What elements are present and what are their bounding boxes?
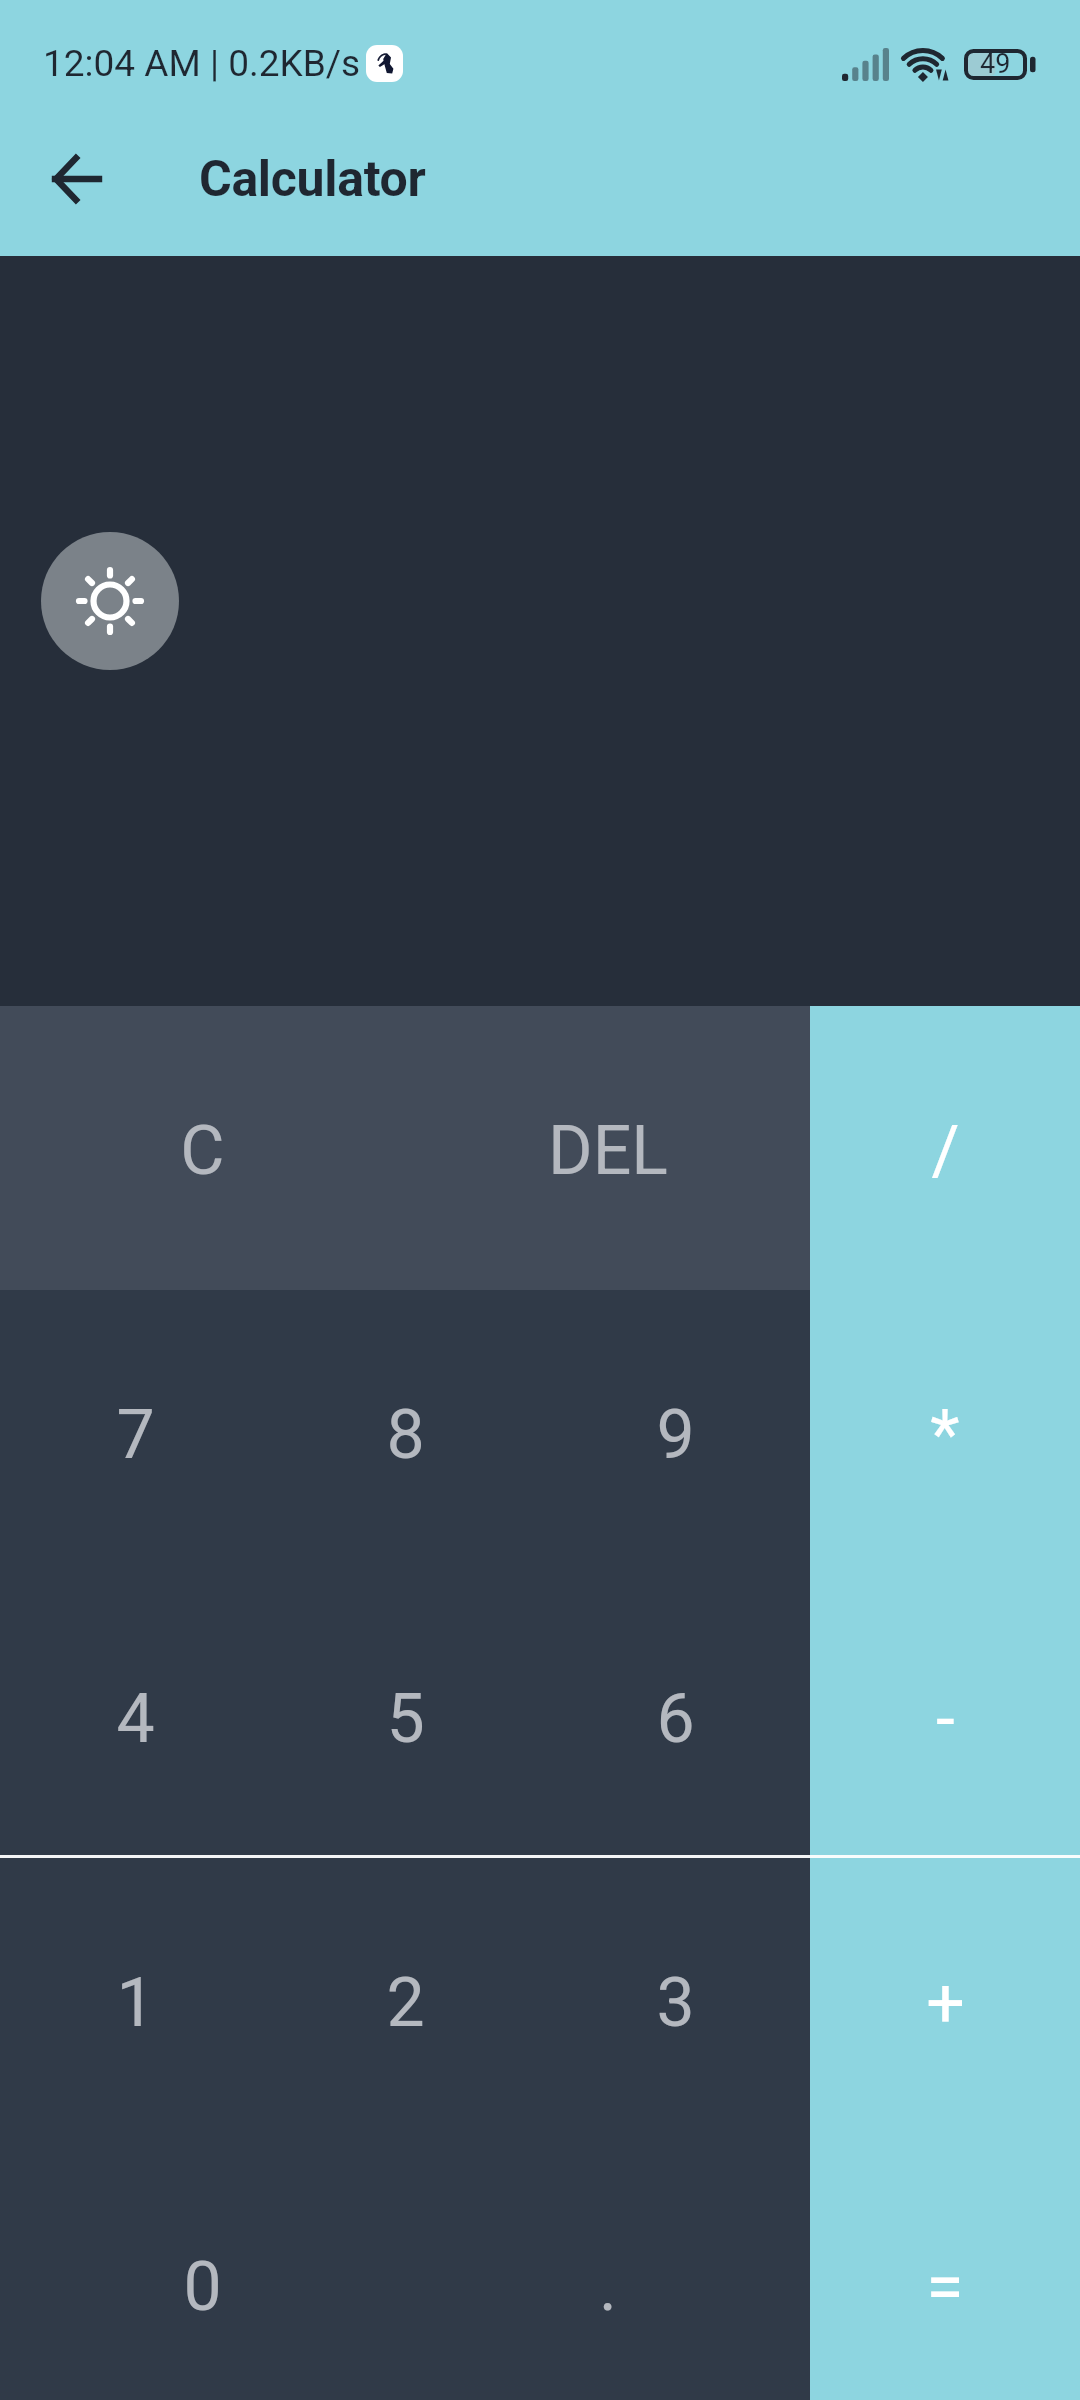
button[interactable]: 1 <box>0 1858 270 2142</box>
button[interactable]: DEL <box>405 1006 810 1290</box>
button[interactable]: 2 <box>270 1858 540 2142</box>
staticText: 1 <box>116 1963 155 2043</box>
staticText: 9 <box>656 1395 695 1475</box>
staticText: 49 <box>980 48 1011 80</box>
staticText: + <box>926 1963 965 2043</box>
staticText: 2 <box>386 1963 425 2043</box>
staticText: 6 <box>656 1679 695 1759</box>
staticText: 7 <box>116 1395 155 1475</box>
button[interactable]: 3 <box>540 1858 810 2142</box>
staticText: = <box>926 2247 964 2327</box>
staticText: 0 <box>183 2247 222 2327</box>
button[interactable]: 9 <box>540 1290 810 1574</box>
button[interactable]: 4 <box>0 1574 270 1858</box>
staticText: 4 <box>116 1679 155 1759</box>
button[interactable]: 7 <box>0 1290 270 1574</box>
staticText: * <box>930 1395 960 1475</box>
staticText: 5 <box>386 1679 425 1759</box>
staticText: . <box>599 2247 617 2327</box>
button[interactable]: Toggle theme <box>41 532 179 670</box>
staticText: 12:04 AM | 0.2KB/s <box>43 42 361 85</box>
button[interactable]: 0 <box>0 2142 405 2400</box>
button[interactable]: = <box>810 2142 1080 2400</box>
button[interactable]: - <box>810 1574 1080 1858</box>
button[interactable]: * <box>810 1290 1080 1574</box>
button[interactable]: Back <box>47 149 107 209</box>
button[interactable]: 6 <box>540 1574 810 1858</box>
staticText: C <box>180 1111 225 1191</box>
button[interactable]: 5 <box>270 1574 540 1858</box>
staticText: / <box>931 1111 960 1191</box>
button[interactable]: C <box>0 1006 405 1290</box>
staticText: DEL <box>548 1111 668 1191</box>
button[interactable]: / <box>810 1006 1080 1290</box>
staticText: 8 <box>386 1395 425 1475</box>
button[interactable]: 8 <box>270 1290 540 1574</box>
staticText: - <box>936 1679 955 1759</box>
staticText: 3 <box>656 1963 695 2043</box>
button[interactable]: + <box>810 1858 1080 2142</box>
staticText: Calculator <box>199 150 426 209</box>
